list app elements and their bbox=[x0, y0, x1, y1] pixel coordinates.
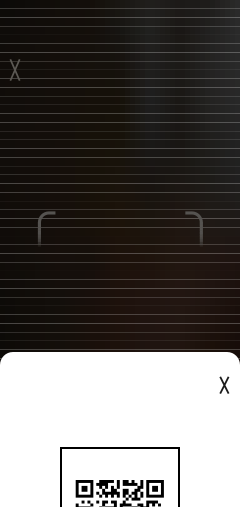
button[interactable]: Close bbox=[207, 368, 240, 402]
button[interactable]: Close scanner bbox=[0, 48, 37, 92]
